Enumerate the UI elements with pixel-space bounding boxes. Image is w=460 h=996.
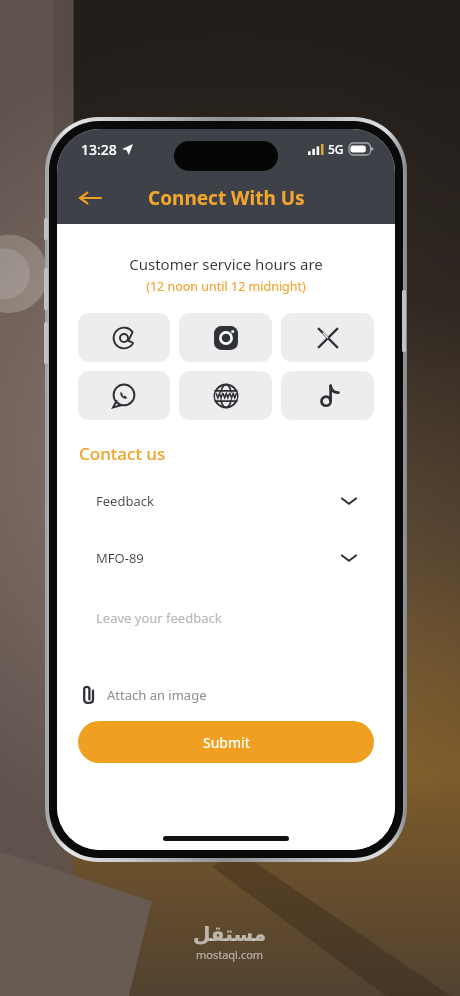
button[interactable]: WhatsApp [78, 371, 170, 420]
staticText: Feedback [96, 492, 154, 510]
staticText: Contact us [79, 442, 166, 465]
button[interactable]: Instagram [179, 313, 272, 362]
staticText: Submit [203, 733, 250, 752]
staticText: مستقل [193, 922, 267, 945]
staticText: mostaql.com [196, 947, 264, 962]
button[interactable]: Email [78, 313, 170, 362]
button[interactable]: Website [179, 371, 272, 420]
staticText: (12 noon until 12 midnight) [57, 278, 395, 295]
button[interactable]: MFO-89 [78, 534, 374, 581]
staticText: Leave your feedback [96, 609, 222, 627]
staticText: 5G [328, 141, 344, 157]
button[interactable]: TikTok [281, 371, 374, 420]
button[interactable]: Leave your feedback [78, 591, 374, 673]
staticText: 13:28 [81, 140, 117, 159]
button[interactable]: Submit [78, 721, 374, 763]
button[interactable]: Attach an image [79, 685, 207, 705]
button[interactable]: Feedback [78, 477, 374, 524]
staticText: Connect With Us [148, 185, 305, 211]
staticText: Customer service hours are [57, 254, 395, 274]
button[interactable]: X [281, 313, 374, 362]
staticText: Attach an image [107, 686, 207, 704]
staticText: MFO-89 [96, 549, 144, 567]
button[interactable]: Back [71, 179, 109, 217]
